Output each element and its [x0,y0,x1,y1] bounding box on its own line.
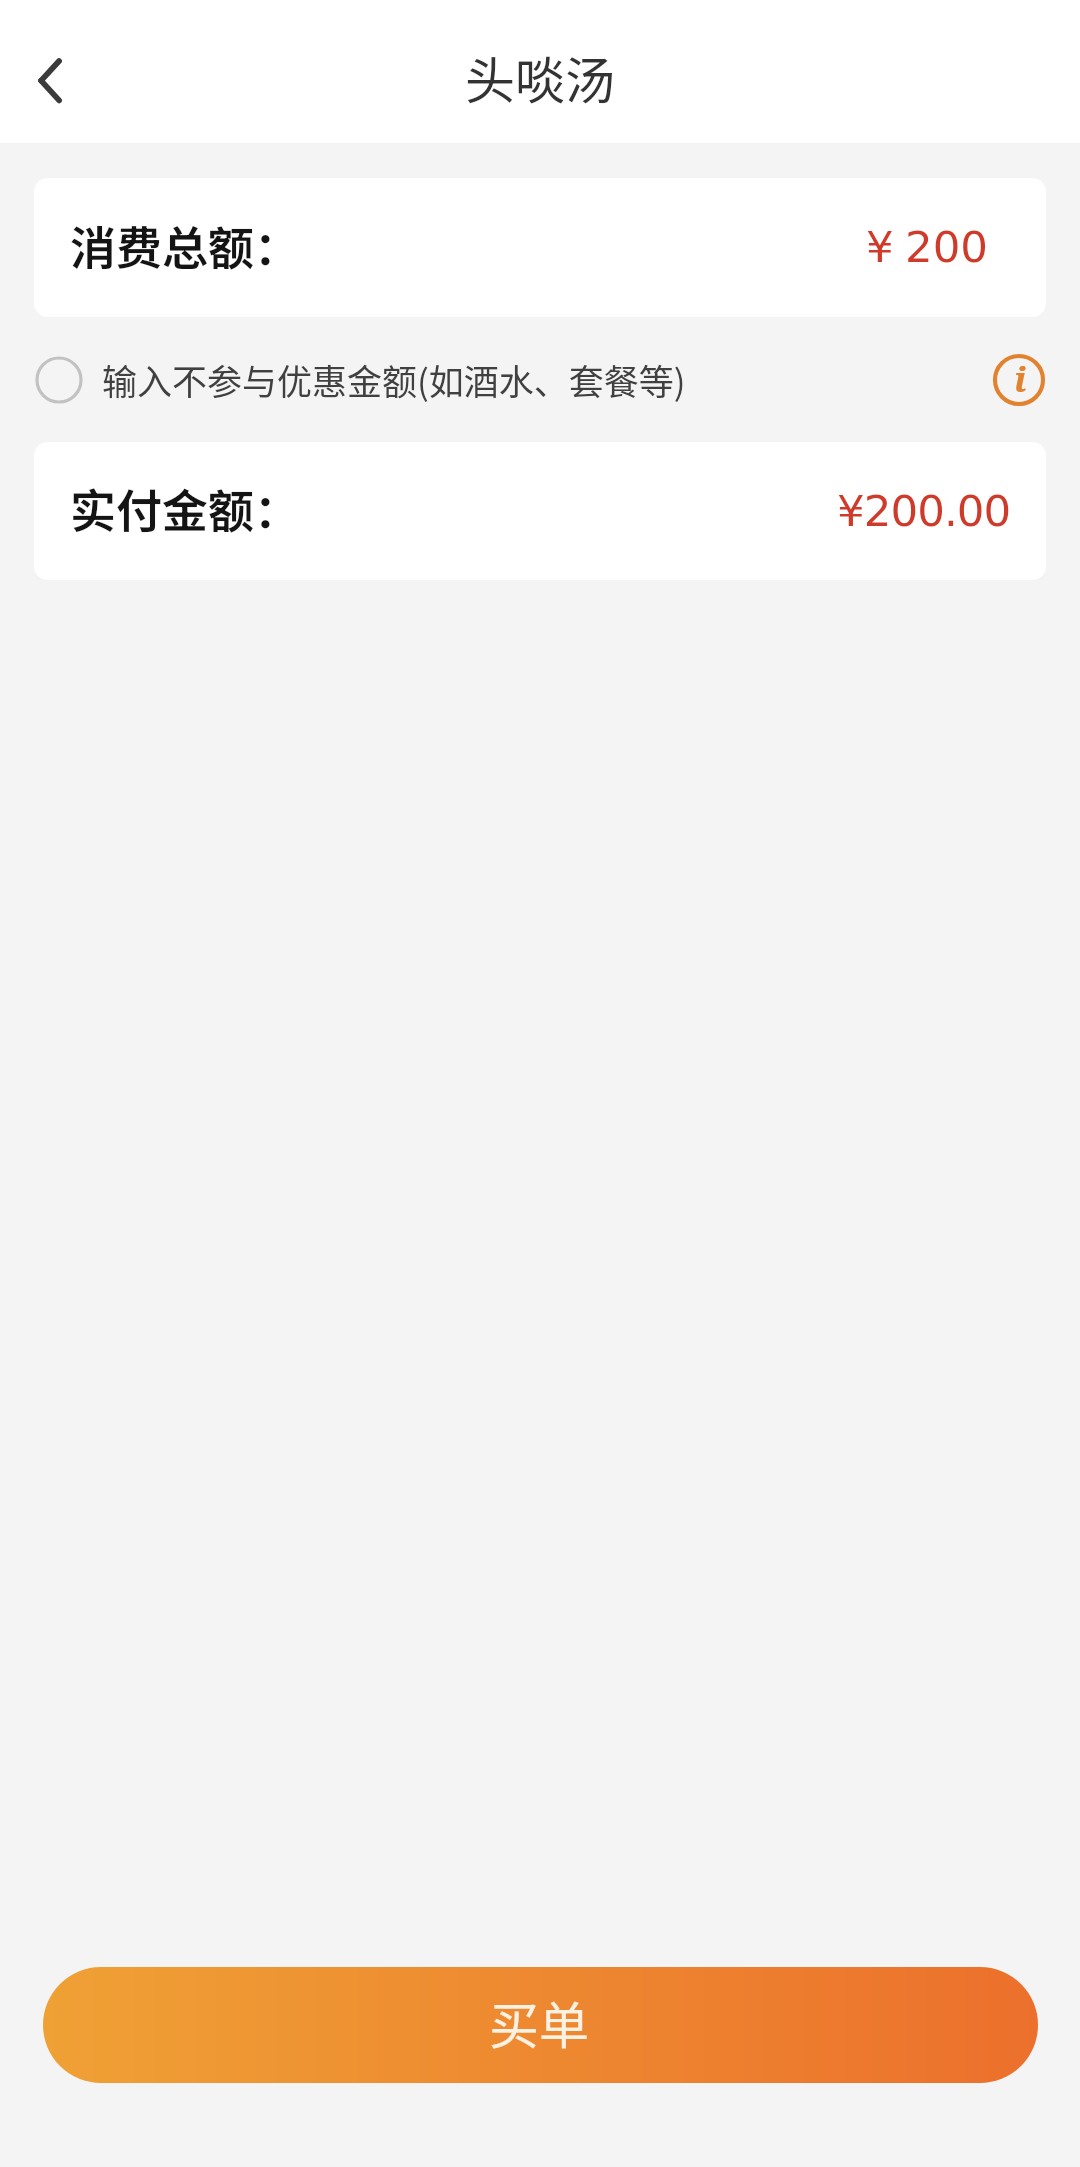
staticText: ¥ [866,222,894,273]
staticText: 买单 [489,1986,589,2058]
staticText: 消费总额： [70,212,300,279]
staticText: 头啖汤 [465,41,615,113]
staticText: 200 [905,222,989,273]
button[interactable]: 消费总额： [34,178,1046,317]
button[interactable]: 实付金额： [34,442,1046,580]
button[interactable]: 输入不参与优惠金额(如酒水、套餐等) [35,354,990,405]
button[interactable]: Info [990,351,1048,409]
button[interactable]: Back [6,36,94,124]
staticText: i [1014,355,1027,403]
staticText: ¥200.00 [837,486,1011,537]
button[interactable]: 买单 [43,1967,1038,2083]
staticText: 实付金额： [70,475,300,542]
staticText: 输入不参与优惠金额(如酒水、套餐等) [102,354,686,405]
